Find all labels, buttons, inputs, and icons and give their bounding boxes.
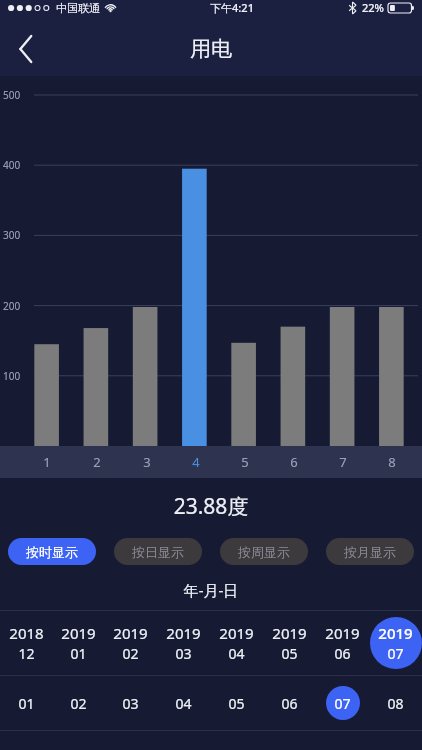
staticText: 300 — [3, 228, 31, 242]
button[interactable]: 07 — [316, 676, 369, 730]
staticText: 01 — [18, 694, 35, 713]
staticText: 03 — [175, 644, 192, 663]
button[interactable]: 06 — [263, 676, 316, 730]
staticText: 下午4:21 — [210, 0, 254, 15]
staticText: 2019 — [378, 623, 413, 643]
staticText: 2018 — [9, 623, 44, 643]
staticText: 2019 — [166, 623, 201, 643]
staticText: 08 — [387, 694, 404, 713]
button[interactable]: 08 — [369, 676, 422, 730]
button[interactable]: 6 — [269, 453, 318, 471]
staticText: 2019 — [61, 623, 96, 643]
staticText: 8 — [388, 453, 396, 471]
button[interactable]: 2019 — [369, 611, 422, 675]
staticText: 2019 — [219, 623, 254, 643]
button[interactable]: 02 — [52, 676, 104, 730]
staticText: 01 — [70, 644, 87, 663]
staticText: 2019 — [113, 623, 148, 643]
button[interactable]: 7 — [318, 453, 367, 471]
staticText: 中国联通 — [56, 1, 100, 15]
staticText: 02 — [122, 644, 139, 663]
staticText: 按日显示 — [132, 544, 184, 560]
staticText: 04 — [175, 694, 192, 713]
staticText: 4 — [192, 453, 200, 471]
button[interactable]: 1 — [22, 453, 72, 471]
staticText: 22% — [362, 0, 384, 15]
button[interactable]: 01 — [0, 676, 52, 730]
staticText: 2019 — [325, 623, 360, 643]
button[interactable]: 2019 — [104, 611, 157, 675]
staticText: 500 — [3, 88, 31, 102]
button[interactable]: 8 — [367, 453, 416, 471]
button[interactable]: 04 — [157, 676, 210, 730]
staticText: 23.88度 — [0, 492, 422, 521]
button[interactable]: 03 — [104, 676, 157, 730]
staticText: 05 — [281, 644, 298, 663]
staticText: 用电 — [190, 36, 232, 62]
button[interactable]: 按周显示 — [220, 538, 308, 565]
staticText: 05 — [228, 694, 245, 713]
staticText: 02 — [70, 694, 87, 713]
button[interactable]: 2018 — [0, 611, 52, 675]
staticText: 2 — [93, 453, 101, 471]
staticText: 06 — [281, 694, 298, 713]
staticText: 07 — [334, 694, 351, 713]
staticText: 6 — [290, 453, 298, 471]
staticText: 3 — [143, 453, 151, 471]
staticText: 07 — [387, 644, 404, 663]
staticText: 年-月-日 — [0, 580, 422, 600]
button[interactable]: 5 — [220, 453, 269, 471]
button[interactable]: 按月显示 — [326, 538, 414, 565]
button[interactable]: 2019 — [157, 611, 210, 675]
button[interactable]: 2 — [72, 453, 122, 471]
staticText: 03 — [122, 694, 139, 713]
staticText: 100 — [3, 369, 31, 383]
button[interactable]: 2019 — [316, 611, 369, 675]
button[interactable]: 按时显示 — [8, 538, 96, 565]
staticText: 200 — [3, 299, 31, 313]
button[interactable]: 按日显示 — [114, 538, 202, 565]
staticText: 按月显示 — [344, 544, 396, 560]
staticText: 1 — [43, 453, 51, 471]
button[interactable]: 2019 — [210, 611, 263, 675]
staticText: 12 — [18, 644, 35, 663]
button[interactable]: 05 — [210, 676, 263, 730]
staticText: 2019 — [272, 623, 307, 643]
button[interactable]: 3 — [122, 453, 171, 471]
staticText: 04 — [228, 644, 245, 663]
staticText: 按周显示 — [238, 544, 290, 560]
staticText: 400 — [3, 158, 31, 172]
button[interactable]: 2019 — [52, 611, 104, 675]
button[interactable]: 2019 — [263, 611, 316, 675]
staticText: 06 — [334, 644, 351, 663]
staticText: 7 — [339, 453, 347, 471]
staticText: 5 — [241, 453, 249, 471]
button[interactable]: 4 — [171, 453, 220, 471]
staticText: 按时显示 — [26, 544, 78, 560]
button[interactable]: Back — [0, 23, 52, 75]
